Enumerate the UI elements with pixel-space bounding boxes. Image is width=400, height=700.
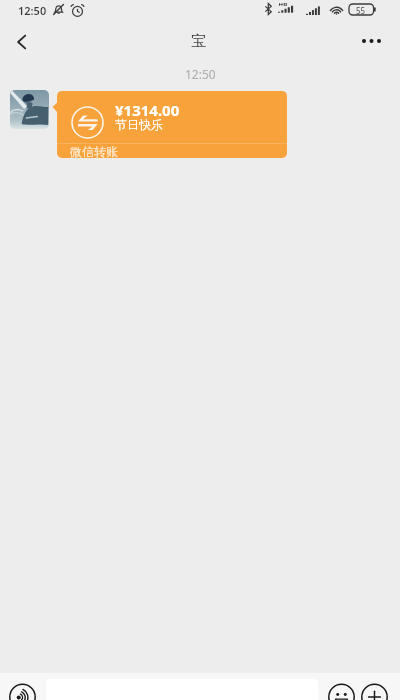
- staticText: 宝: [191, 32, 206, 51]
- staticText: ¥1314.00: [115, 100, 180, 120]
- staticText: 节日快乐: [115, 117, 163, 132]
- staticText: 12:50: [18, 3, 47, 18]
- button[interactable]: Voice message: [9, 684, 36, 700]
- staticText: 微信转账: [70, 144, 118, 158]
- button[interactable]: More functions: [361, 684, 388, 700]
- button[interactable]: More: [352, 24, 390, 58]
- button[interactable]: WeChat transfer ¥1314.00 节日快乐: [57, 91, 287, 158]
- button[interactable]: Back: [2, 24, 42, 60]
- staticText: 55: [356, 5, 366, 16]
- button[interactable]: Emoji: [328, 684, 355, 700]
- button[interactable]: Avatar: [10, 90, 49, 129]
- staticText: 12:50: [185, 66, 216, 82]
